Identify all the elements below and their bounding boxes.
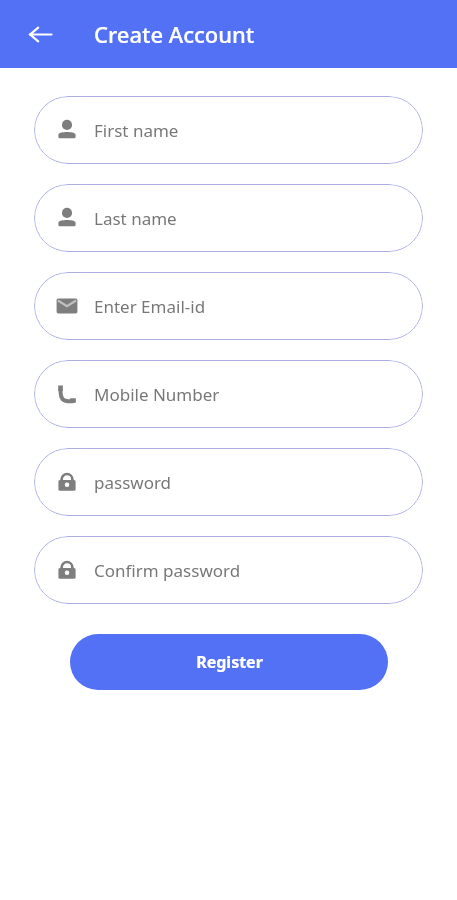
staticText: First name [94,119,179,142]
staticText: Last name [94,207,177,230]
button[interactable]: Confirm password [34,536,423,604]
button[interactable]: Register [70,634,388,690]
button[interactable]: Mobile Number [34,360,423,428]
staticText: Mobile Number [94,383,220,406]
staticText: password [94,471,172,494]
staticText: Create Account [94,19,255,49]
button[interactable]: Back [18,12,62,56]
staticText: Enter Email-id [94,295,206,318]
button[interactable]: Enter Email-id [34,272,423,340]
staticText: Confirm password [94,559,241,582]
button[interactable]: First name [34,96,423,164]
button[interactable]: password [34,448,423,516]
staticText: Register [196,651,263,673]
button[interactable]: Last name [34,184,423,252]
